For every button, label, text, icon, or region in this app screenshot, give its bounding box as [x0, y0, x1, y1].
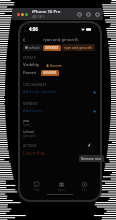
button[interactable]: Rotate	[77, 12, 82, 17]
staticText: GENESIS	[43, 71, 57, 75]
staticText: ryan	[23, 123, 30, 127]
button[interactable]: ryan and ginocelli	[62, 44, 95, 51]
button[interactable]: Visibility	[20, 61, 100, 69]
staticText: Parent	[23, 70, 36, 76]
staticText: ryan and ginocelli	[43, 37, 78, 43]
staticText: 4:06	[29, 26, 38, 32]
staticText: ACTIONS	[23, 144, 37, 148]
staticText: Remove user	[81, 156, 102, 161]
staticText: Add users	[23, 108, 43, 114]
staticText: iOS 18.1	[32, 15, 45, 19]
button[interactable]: You	[78, 181, 91, 193]
button[interactable]: Screenshot	[86, 12, 91, 17]
button[interactable]: Back	[20, 36, 28, 44]
button[interactable]: Parent	[20, 69, 100, 77]
staticText: ryan and ginocelli	[64, 45, 93, 50]
staticText: school	[23, 129, 34, 134]
staticText: SUB-CHANNELS	[23, 83, 47, 87]
button[interactable]: GENESIS	[43, 45, 61, 51]
staticText: ginocelli	[23, 134, 36, 138]
button[interactable]: school	[20, 128, 100, 139]
staticText: You	[82, 188, 87, 192]
button[interactable]: school	[23, 44, 42, 51]
button[interactable]: Chat	[29, 181, 44, 193]
staticText: Secret	[50, 63, 62, 68]
staticText: school	[29, 45, 40, 50]
button[interactable]: Add users	[20, 107, 100, 115]
staticText: Leave chat...	[23, 150, 49, 156]
staticText: Chat	[33, 188, 40, 192]
button[interactable]: Add sub-channel	[20, 88, 100, 96]
button[interactable]: you	[20, 117, 100, 128]
button[interactable]: Leave chat...	[20, 149, 100, 157]
staticText: GENESIS	[45, 46, 59, 50]
staticText: Add sub-channel	[23, 89, 56, 95]
staticText: you	[23, 118, 30, 123]
staticText: Apps	[58, 188, 65, 192]
staticText: Visibility	[23, 62, 40, 68]
button[interactable]: Apps	[54, 181, 69, 193]
staticText: PRIVACY	[23, 56, 36, 60]
staticText: iPhone 16 Pro	[32, 9, 61, 15]
button[interactable]: Record	[95, 12, 100, 17]
staticText: MEMBERS	[23, 102, 38, 106]
